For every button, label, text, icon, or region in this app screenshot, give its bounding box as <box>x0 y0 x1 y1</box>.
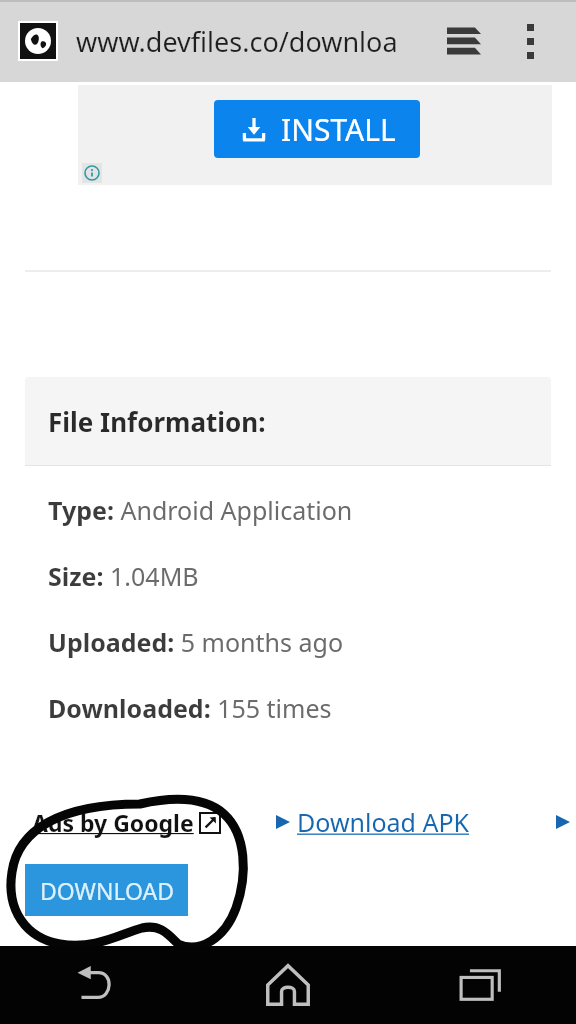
button[interactable]: Home <box>192 946 384 1024</box>
button[interactable]: Recent apps <box>384 946 576 1024</box>
button[interactable]: INSTALL <box>214 100 420 158</box>
button[interactable]: Back <box>0 946 192 1024</box>
button[interactable]: Ad information <box>82 163 102 183</box>
button[interactable]: Site information <box>20 23 56 59</box>
button[interactable]: More options <box>502 13 558 69</box>
staticText: File Information: <box>48 404 266 439</box>
staticText: www.devfiles.co/downloa <box>76 23 398 60</box>
button[interactable]: Ads by Google <box>32 807 220 838</box>
staticText: Uploaded: 5 months ago <box>48 625 344 659</box>
button[interactable]: Download APK <box>276 805 470 839</box>
button[interactable]: Tabs <box>436 13 492 69</box>
staticText: INSTALL <box>281 109 396 150</box>
staticText: Downloaded: 155 times <box>48 691 332 725</box>
staticText: Size: 1.04MB <box>48 559 199 593</box>
button[interactable]: Downloa <box>556 805 576 839</box>
button[interactable]: www.devfiles.co/downloa <box>76 23 430 60</box>
staticText: DOWNLOAD <box>40 875 174 906</box>
staticText: Type: Android Application <box>48 493 353 527</box>
staticText: Download APK <box>297 805 470 839</box>
button[interactable]: DOWNLOAD <box>25 864 188 916</box>
staticText: Ads by Google <box>32 807 194 838</box>
